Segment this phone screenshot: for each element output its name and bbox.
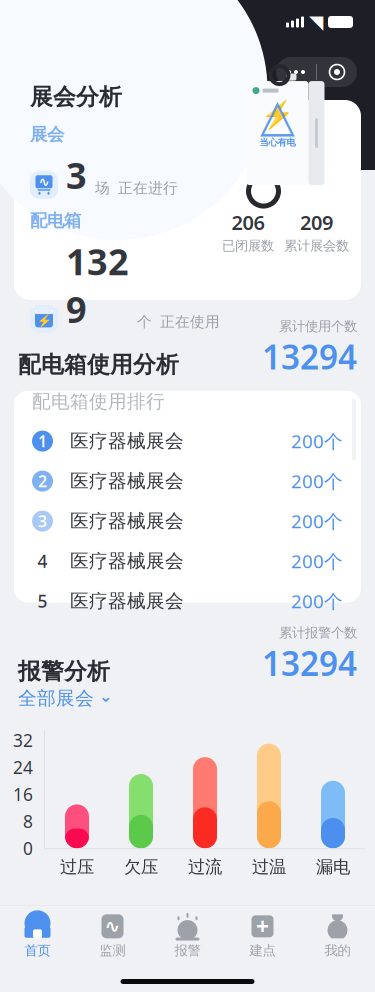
staticText: 5: [37, 590, 47, 613]
staticText: 累计展会数: [284, 238, 349, 254]
button[interactable]: +: [225, 911, 300, 961]
staticText: 13294: [262, 334, 357, 379]
staticText: 209: [300, 209, 333, 236]
staticText: 医疗器械展会: [70, 430, 184, 452]
staticText: 2: [38, 470, 47, 492]
staticText: 医疗器械展会: [70, 510, 184, 532]
staticText: 16: [13, 783, 33, 806]
staticText: ∿: [104, 916, 120, 937]
staticText: ∿: [38, 174, 49, 189]
staticText: 累计报警个数: [279, 625, 357, 641]
staticText: 200个: [291, 469, 343, 493]
staticText: 安智盾–数智展馆: [18, 53, 228, 91]
button[interactable]: 全部展会: [0, 685, 375, 711]
staticText: 首页: [24, 942, 50, 959]
button[interactable]: 报警: [150, 911, 225, 961]
staticText: 24: [13, 756, 33, 779]
staticText: 配电箱使用排行: [32, 390, 165, 413]
staticText: 场: [95, 179, 110, 197]
button[interactable]: 首页: [0, 911, 75, 961]
button[interactable]: 4: [14, 541, 361, 581]
button[interactable]: 3: [14, 501, 361, 541]
button[interactable]: More: [276, 57, 316, 87]
button[interactable]: 5: [14, 581, 361, 621]
staticText: 206: [231, 209, 264, 236]
staticText: +: [256, 911, 269, 941]
staticText: 医疗器械展会: [70, 550, 184, 572]
staticText: 200个: [291, 549, 343, 573]
staticText: 配电箱: [30, 210, 81, 231]
staticText: 过温: [252, 856, 286, 878]
staticText: 200个: [291, 589, 343, 613]
staticText: 1329: [66, 237, 129, 333]
staticText: 32: [13, 729, 33, 752]
staticText: 3: [66, 151, 87, 199]
staticText: 展会: [30, 124, 64, 145]
staticText: 欠压: [124, 856, 158, 878]
staticText: 我的: [324, 942, 350, 959]
button[interactable]: 2: [14, 461, 361, 501]
staticText: 展会分析: [30, 83, 122, 111]
staticText: 正在使用: [160, 313, 220, 331]
staticText: ◥: [309, 11, 323, 33]
staticText: 4: [37, 550, 47, 573]
button[interactable]: 我的: [300, 911, 375, 961]
staticText: 当心有电: [259, 136, 295, 148]
staticText: 建点: [249, 942, 275, 959]
staticText: 全部展会: [18, 687, 94, 710]
staticText: 报警分析: [18, 657, 110, 685]
staticText: 累计使用个数: [279, 318, 357, 334]
staticText: 过压: [60, 856, 94, 878]
button[interactable]: 1: [14, 421, 361, 461]
staticText: 个: [137, 313, 152, 331]
staticText: 过流: [188, 856, 222, 878]
staticText: △: [260, 90, 295, 141]
staticText: 医疗器械展会: [70, 590, 184, 612]
staticText: 正在进行: [118, 179, 178, 197]
staticText: 8: [23, 810, 33, 833]
staticText: 200个: [291, 509, 343, 533]
button[interactable]: ∿: [75, 911, 150, 961]
staticText: 13294: [262, 641, 357, 685]
staticText: 已闭展数: [222, 238, 274, 254]
staticText: 200个: [291, 429, 343, 453]
staticText: 3: [38, 510, 47, 532]
staticText: 漏电: [316, 856, 350, 878]
staticText: 监测: [99, 942, 125, 959]
staticText: ⚡: [36, 314, 51, 328]
staticText: 0: [23, 837, 33, 860]
staticText: 1: [38, 430, 47, 452]
staticText: 报警: [174, 942, 200, 959]
staticText: ⌄: [99, 687, 112, 705]
staticText: 医疗器械展会: [70, 470, 184, 492]
staticText: 配电箱使用分析: [18, 351, 179, 379]
button[interactable]: Target: [317, 57, 357, 87]
staticText: ⚡: [261, 100, 294, 131]
